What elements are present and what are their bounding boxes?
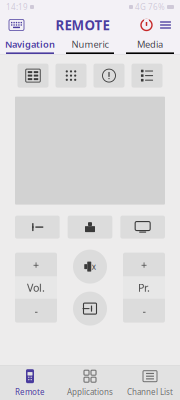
staticText: 14:19 <box>6 2 28 12</box>
staticText: Applications <box>67 387 113 397</box>
staticText: x <box>92 261 96 272</box>
button[interactable]: Vol. up <box>15 253 57 277</box>
button[interactable]: Vol. down <box>15 299 57 323</box>
staticText: Navigation <box>5 38 55 50</box>
button[interactable]: Keypad <box>55 64 86 88</box>
staticText: Media <box>137 38 163 50</box>
button[interactable]: Home <box>68 216 112 239</box>
button[interactable]: Pr. down <box>123 299 165 323</box>
button[interactable]: Options <box>131 64 162 88</box>
button[interactable]: Numeric <box>60 36 120 54</box>
button[interactable]: Menu <box>156 16 175 34</box>
button[interactable]: Source <box>120 216 165 239</box>
button[interactable]: Navigation <box>0 36 60 54</box>
staticText: REMOTE <box>55 16 109 34</box>
button[interactable]: Mute <box>73 250 107 284</box>
staticText: - <box>142 303 145 318</box>
staticText: + <box>141 257 147 272</box>
staticText: Pr. <box>138 280 150 295</box>
button[interactable]: Applications <box>60 366 120 400</box>
button[interactable]: Channel List <box>120 366 180 400</box>
button[interactable]: Keyboard <box>5 16 28 34</box>
button[interactable]: Remote <box>0 366 60 400</box>
staticText: 76% <box>148 2 165 12</box>
staticText: Numeric <box>71 38 108 50</box>
staticText: - <box>34 303 37 318</box>
button[interactable]: Info <box>93 64 124 88</box>
button[interactable]: Input source <box>73 292 107 326</box>
button[interactable]: Power <box>137 14 156 35</box>
staticText: Channel List <box>127 387 173 397</box>
button[interactable]: Guide <box>17 64 48 88</box>
button[interactable]: Back <box>15 216 60 239</box>
staticText: Vol. <box>27 280 45 295</box>
button[interactable]: Pr. up <box>123 253 165 277</box>
button[interactable]: Media <box>120 36 180 54</box>
staticText: 4G <box>135 2 146 12</box>
staticText: Remote <box>15 387 45 397</box>
staticText: + <box>33 257 39 272</box>
